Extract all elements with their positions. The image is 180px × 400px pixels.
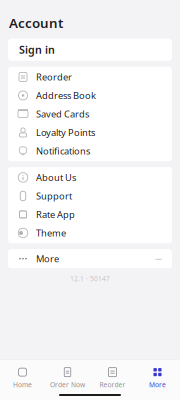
staticText: Order Now [50, 380, 85, 389]
staticText: Theme [36, 227, 66, 239]
staticText: Support [36, 190, 72, 202]
button[interactable]: Theme [8, 224, 172, 242]
button[interactable]: Reorder [8, 68, 172, 86]
button[interactable]: Home [0, 364, 45, 392]
button[interactable]: Rate App [8, 205, 172, 224]
staticText: Saved Cards [36, 108, 89, 120]
staticText: Account [9, 14, 63, 32]
button[interactable]: Sign in [8, 39, 172, 61]
button[interactable]: Reorder [90, 364, 135, 392]
staticText: Address Book [36, 89, 96, 102]
button[interactable]: Support [8, 187, 172, 205]
button[interactable]: Saved Cards [8, 105, 172, 123]
button[interactable]: Loyalty Points [8, 123, 172, 142]
staticText: More [36, 252, 59, 265]
staticText: Reorder [99, 380, 125, 389]
staticText: Sign in [19, 43, 55, 57]
button[interactable]: Order Now [45, 364, 90, 392]
staticText: 12.1 · 50147 [70, 274, 110, 283]
button[interactable]: Notifications [8, 142, 172, 160]
button[interactable]: More [8, 249, 172, 268]
button[interactable]: About Us [8, 168, 172, 187]
staticText: More [149, 380, 166, 389]
staticText: Rate App [36, 208, 75, 221]
staticText: Home [13, 380, 32, 389]
button[interactable]: Address Book [8, 86, 172, 105]
staticText: Notifications [36, 145, 90, 157]
staticText: About Us [36, 171, 76, 184]
button[interactable]: More [135, 364, 180, 392]
staticText: Loyalty Points [36, 126, 95, 139]
staticText: Reorder [36, 71, 72, 83]
